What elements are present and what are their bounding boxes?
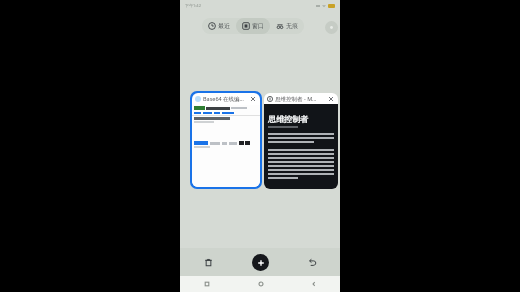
- staticText: 下午1:42: [185, 3, 201, 8]
- button[interactable]: 更多选项: [325, 21, 338, 34]
- staticText: 窗口: [252, 22, 264, 30]
- button[interactable]: 最近任务: [180, 276, 234, 292]
- button[interactable]: 思维控制者 - M…: [264, 93, 338, 189]
- button[interactable]: 关闭标签页: [327, 95, 335, 103]
- button[interactable]: Base64 在线编…: [190, 91, 262, 189]
- staticText: 思维控制者 - M…: [275, 95, 327, 103]
- button[interactable]: 关闭标签页: [249, 95, 257, 103]
- button[interactable]: 返回: [287, 276, 340, 292]
- button[interactable]: 主屏幕: [234, 276, 287, 292]
- staticText: 无痕: [286, 22, 298, 30]
- button[interactable]: 最近: [202, 18, 236, 34]
- button[interactable]: 无痕: [270, 18, 304, 34]
- staticText: Base64 在线编…: [203, 95, 249, 103]
- staticText: 思维控制者: [268, 114, 308, 124]
- button[interactable]: 新建标签页: [252, 254, 269, 271]
- staticText: 最近: [218, 22, 230, 30]
- button[interactable]: 窗口: [236, 18, 270, 34]
- button[interactable]: 撤销: [304, 254, 320, 270]
- button[interactable]: 关闭所有标签页: [200, 254, 216, 270]
